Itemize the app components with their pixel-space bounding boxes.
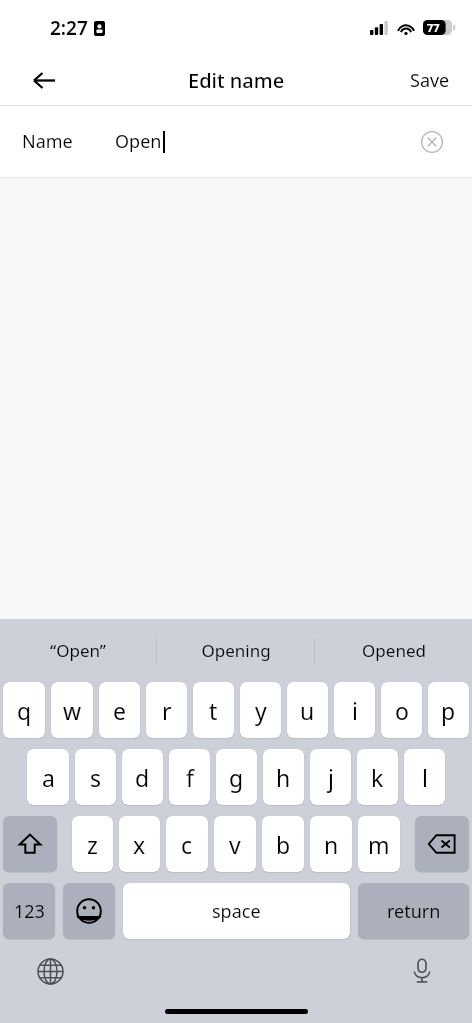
staticText: w xyxy=(63,695,82,726)
staticText: v xyxy=(229,829,241,860)
staticText: j xyxy=(328,762,334,793)
staticText: Opened xyxy=(362,639,426,662)
button[interactable]: return xyxy=(358,883,469,939)
button[interactable]: p xyxy=(428,682,469,738)
staticText: a xyxy=(42,762,55,793)
button[interactable]: Change keyboard xyxy=(28,949,72,993)
staticText: y xyxy=(255,695,267,726)
staticText: 2:27 xyxy=(50,15,88,41)
button[interactable]: l xyxy=(404,749,445,805)
staticText: s xyxy=(90,762,102,793)
staticText: Edit name xyxy=(188,67,285,94)
staticText: return xyxy=(387,899,441,924)
button[interactable]: e xyxy=(99,682,140,738)
button[interactable]: Opened xyxy=(315,619,472,682)
button[interactable]: Shift xyxy=(3,816,57,872)
button[interactable]: Save xyxy=(400,62,460,99)
staticText: i xyxy=(352,695,358,726)
staticText: z xyxy=(87,829,98,860)
staticText: m xyxy=(368,829,390,860)
staticText: 77 xyxy=(427,20,440,35)
button[interactable]: Name xyxy=(0,106,472,177)
button[interactable]: d xyxy=(122,749,163,805)
staticText: p xyxy=(441,695,456,726)
staticText: b xyxy=(276,829,291,860)
button[interactable]: k xyxy=(357,749,398,805)
button[interactable]: a xyxy=(27,749,69,805)
button[interactable]: z xyxy=(72,816,113,872)
button[interactable]: Back xyxy=(22,58,66,102)
staticText: Opening xyxy=(201,639,271,662)
button[interactable]: Emoji xyxy=(63,883,115,939)
button[interactable]: q xyxy=(3,682,45,738)
button[interactable]: v xyxy=(214,816,256,872)
button[interactable]: h xyxy=(263,749,304,805)
staticText: k xyxy=(371,762,384,793)
staticText: r xyxy=(162,695,172,726)
staticText: Open xyxy=(115,129,162,154)
button[interactable]: “Open” xyxy=(0,619,156,682)
staticText: 123 xyxy=(14,899,45,924)
button[interactable]: Opening xyxy=(157,619,314,682)
staticText: f xyxy=(186,762,194,793)
button[interactable]: s xyxy=(75,749,116,805)
button[interactable]: u xyxy=(287,682,328,738)
button[interactable]: o xyxy=(381,682,422,738)
staticText: space xyxy=(212,899,261,924)
staticText: n xyxy=(324,829,339,860)
staticText: e xyxy=(113,695,126,726)
staticText: x xyxy=(133,829,146,860)
button[interactable]: g xyxy=(216,749,257,805)
button[interactable]: m xyxy=(358,816,400,872)
button[interactable]: y xyxy=(240,682,281,738)
staticText: c xyxy=(181,829,193,860)
button[interactable]: x xyxy=(119,816,160,872)
button[interactable]: t xyxy=(193,682,234,738)
staticText: o xyxy=(395,695,409,726)
button[interactable]: i xyxy=(334,682,375,738)
button[interactable]: Dictate xyxy=(400,949,444,993)
staticText: Name xyxy=(22,129,73,154)
staticText: l xyxy=(422,762,428,793)
button[interactable]: j xyxy=(310,749,351,805)
button[interactable]: n xyxy=(310,816,352,872)
staticText: d xyxy=(135,762,150,793)
button[interactable]: Backspace xyxy=(415,816,469,872)
button[interactable]: r xyxy=(146,682,187,738)
button[interactable]: Clear text xyxy=(414,124,450,160)
staticText: g xyxy=(229,762,244,793)
staticText: Save xyxy=(410,68,450,93)
button[interactable]: b xyxy=(262,816,304,872)
button[interactable]: space xyxy=(123,883,350,939)
staticText: q xyxy=(17,695,32,726)
button[interactable]: 123 xyxy=(3,883,55,939)
button[interactable]: w xyxy=(51,682,93,738)
button[interactable]: f xyxy=(169,749,210,805)
staticText: u xyxy=(300,695,315,726)
staticText: h xyxy=(276,762,291,793)
staticText: t xyxy=(209,695,218,726)
staticText: “Open” xyxy=(50,639,106,662)
button[interactable]: c xyxy=(166,816,208,872)
